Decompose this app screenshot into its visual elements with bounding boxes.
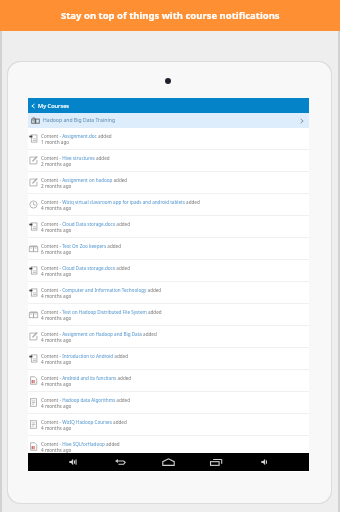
staticText: 4 months ago: [41, 359, 72, 365]
staticText: 4 months ago: [41, 447, 72, 453]
staticText: 4 months ago: [41, 271, 72, 277]
staticText: 2 months ago: [41, 161, 72, 167]
staticText: Content - Assignment on hadoop added: [41, 177, 128, 183]
button[interactable]: Content - Hive structures added: [28, 150, 309, 172]
button[interactable]: My Courses: [28, 98, 309, 113]
staticText: 4 months ago: [41, 337, 72, 343]
button[interactable]: Content - Wiziq virtual classroom app fo…: [28, 194, 309, 216]
staticText: Content - Assignment on Hadoop and Big D…: [41, 331, 157, 337]
staticText: 2 months ago: [41, 183, 72, 189]
staticText: Content - Computer and Information Techn…: [41, 287, 162, 293]
staticText: Content - Cloud Data storage.docx added: [41, 221, 130, 227]
button[interactable]: Content - WizIQ Hadoop Courses added: [28, 414, 309, 436]
button[interactable]: Volume down: [66, 456, 79, 468]
staticText: Content - Test On Zoo keepers added: [41, 243, 122, 249]
staticText: Content - Cloud Data storage.docx added: [41, 265, 130, 271]
staticText: 4 months ago: [41, 403, 72, 409]
staticText: 4 months ago: [41, 293, 72, 299]
button[interactable]: Volume up: [258, 456, 271, 468]
button[interactable]: Content - Cloud Data storage.docx added: [28, 216, 309, 238]
button[interactable]: Content - Android and its functions adde…: [28, 370, 309, 392]
staticText: 4 months ago: [41, 315, 72, 321]
button[interactable]: Stay on top of things with course notifi…: [0, 0, 340, 31]
button[interactable]: Content - Test On Zoo keepers added: [28, 238, 309, 260]
staticText: Content - Test on Hadoop Distributed Fil…: [41, 309, 162, 315]
staticText: 4 months ago: [41, 425, 72, 431]
button[interactable]: Content - Assignment.doc added: [28, 128, 309, 150]
staticText: 6 months ago: [41, 249, 72, 255]
button[interactable]: Hadoop and Big Data Training: [28, 113, 309, 128]
staticText: Stay on top of things with course notifi…: [61, 9, 280, 22]
button[interactable]: Content - Assignment on Hadoop and Big D…: [28, 326, 309, 348]
button[interactable]: Back: [114, 456, 127, 468]
staticText: Content - WizIQ Hadoop Courses added: [41, 419, 127, 425]
button[interactable]: Recent apps: [210, 456, 223, 468]
staticText: My Courses: [38, 102, 70, 110]
staticText: Content - Assignment.doc added: [41, 133, 112, 139]
staticText: Content - Android and its functions adde…: [41, 375, 132, 381]
staticText: Content - Wiziq virtual classroom app fo…: [41, 199, 200, 205]
staticText: Content - Hadoop data Algorithms added: [41, 397, 130, 403]
staticText: Content - Introduction to Android added: [41, 353, 128, 359]
button[interactable]: Content - Test on Hadoop Distributed Fil…: [28, 304, 309, 326]
button[interactable]: Content - Cloud Data storage.docx added: [28, 260, 309, 282]
button[interactable]: Content - Assignment on hadoop added: [28, 172, 309, 194]
staticText: 4 months ago: [41, 205, 72, 211]
staticText: 4 months ago: [41, 381, 72, 387]
staticText: 1 month ago: [41, 139, 70, 145]
button[interactable]: Content - Introduction to Android added: [28, 348, 309, 370]
staticText: Hadoop and Big Data Training: [43, 117, 116, 124]
button[interactable]: Content - Computer and Information Techn…: [28, 282, 309, 304]
staticText: Content - Hive SQLforHadoop added: [41, 441, 120, 447]
staticText: Content - Hive structures added: [41, 155, 110, 161]
button[interactable]: Content - Hive SQLforHadoop added: [28, 436, 309, 458]
button[interactable]: Content - Hadoop data Algorithms added: [28, 392, 309, 414]
button[interactable]: Home: [162, 456, 175, 468]
staticText: 4 months ago: [41, 227, 72, 233]
